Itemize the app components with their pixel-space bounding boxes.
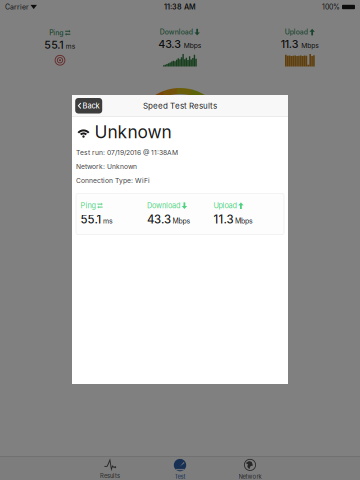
button[interactable]: Network: [215, 456, 285, 480]
staticText: ms: [103, 217, 113, 225]
staticText: Unknown: [94, 121, 171, 142]
staticText: 11.3: [213, 213, 233, 226]
staticText: Back: [83, 101, 100, 110]
staticText: Ping: [49, 29, 63, 37]
staticText: Upload: [285, 28, 308, 36]
staticText: Connection Type: WiFi: [76, 176, 150, 184]
staticText: Carrier: [5, 3, 29, 11]
staticText: Network: Unknown: [76, 162, 137, 170]
staticText: 43.3: [147, 213, 171, 226]
staticText: Download: [147, 201, 180, 210]
staticText: Mbps: [301, 41, 319, 49]
staticText: Upload: [213, 201, 236, 210]
staticText: Results: [100, 472, 120, 479]
staticText: Mbps: [235, 217, 253, 225]
staticText: 100%: [322, 3, 340, 11]
staticText: Test: [174, 473, 185, 480]
staticText: 55.1: [80, 213, 101, 226]
button[interactable]: Test: [145, 456, 215, 480]
staticText: 43.3: [158, 37, 181, 50]
staticText: 55.1: [44, 38, 63, 51]
staticText: Mbps: [184, 41, 202, 49]
staticText: Ping: [80, 201, 95, 210]
button[interactable]: Back: [75, 98, 102, 113]
staticText: Test run: 07/19/2016 @ 11:38AM: [76, 148, 178, 156]
staticText: Network: [238, 473, 261, 480]
staticText: ms: [66, 42, 76, 50]
staticText: 11:38 AM: [164, 3, 196, 11]
staticText: Download: [160, 28, 193, 36]
button[interactable]: Results: [75, 456, 145, 480]
staticText: Speed Test Results: [143, 101, 217, 111]
staticText: 11.3: [281, 37, 299, 50]
staticText: Mbps: [172, 217, 190, 225]
